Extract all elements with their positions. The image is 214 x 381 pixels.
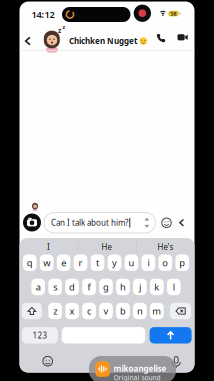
- button[interactable]: l: [167, 279, 181, 295]
- staticText: f: [87, 281, 90, 293]
- staticText: I: [47, 242, 50, 252]
- button[interactable]: t: [91, 254, 104, 271]
- staticText: He's: [157, 242, 173, 252]
- staticText: a: [36, 281, 41, 293]
- staticText: s: [53, 281, 57, 293]
- staticText: q: [27, 256, 33, 269]
- staticText: u: [128, 256, 134, 269]
- button[interactable]: Call: [152, 29, 170, 47]
- button[interactable]: m: [150, 303, 164, 319]
- button[interactable]: c: [82, 303, 96, 319]
- button[interactable]: o: [158, 254, 172, 271]
- staticText: t: [96, 256, 99, 269]
- staticText: b: [120, 305, 126, 317]
- staticText: g: [103, 281, 109, 293]
- button[interactable]: Send a chat: [44, 212, 155, 233]
- button[interactable]: Emoji: [40, 353, 55, 369]
- button[interactable]: r: [74, 254, 87, 271]
- staticText: j: [139, 281, 141, 293]
- staticText: Chichken Nugget: [69, 36, 137, 46]
- staticText: r: [79, 256, 83, 269]
- staticText: 14:12: [31, 8, 54, 21]
- button[interactable]: v: [99, 303, 113, 319]
- staticText: h: [120, 281, 126, 293]
- staticText: 123: [32, 330, 47, 341]
- button[interactable]: He: [79, 239, 135, 254]
- button[interactable]: 123: [22, 327, 58, 343]
- button[interactable]: x: [65, 303, 79, 319]
- button[interactable]: h: [116, 279, 130, 295]
- button[interactable]: s: [48, 279, 62, 295]
- button[interactable]: g: [99, 279, 113, 295]
- staticText: k: [154, 281, 159, 293]
- staticText: y: [112, 256, 117, 269]
- staticText: d: [69, 281, 75, 293]
- button[interactable]: z: [48, 303, 62, 319]
- button[interactable]: Original sound - mikoangelise: [89, 356, 176, 381]
- staticText: i: [147, 256, 149, 269]
- button[interactable]: n: [133, 303, 147, 319]
- button[interactable]: k: [150, 279, 164, 295]
- button[interactable]: w: [40, 254, 53, 271]
- button[interactable]: Shift: [22, 303, 42, 319]
- button[interactable]: d: [65, 279, 79, 295]
- button[interactable]: Space: [62, 327, 145, 343]
- button[interactable]: f: [82, 279, 96, 295]
- staticText: p: [179, 256, 185, 269]
- button[interactable]: I: [21, 239, 77, 254]
- staticText: He: [101, 242, 112, 252]
- button[interactable]: y: [108, 254, 121, 271]
- button[interactable]: u: [125, 254, 138, 271]
- button[interactable]: He's: [137, 239, 193, 254]
- staticText: w: [43, 256, 50, 269]
- button[interactable]: j: [133, 279, 147, 295]
- staticText: n: [137, 305, 143, 317]
- button[interactable]: Delete: [170, 303, 191, 319]
- button[interactable]: e: [57, 254, 70, 271]
- button[interactable]: Dictation: [169, 354, 184, 371]
- staticText: c: [87, 305, 91, 317]
- staticText: mikoangelise: [113, 363, 166, 374]
- staticText: x: [70, 305, 75, 317]
- staticText: Original sound: [113, 373, 160, 381]
- staticText: z: [62, 23, 65, 31]
- staticText: v: [103, 305, 108, 317]
- staticText: o: [162, 256, 168, 269]
- staticText: e: [61, 256, 66, 269]
- button[interactable]: Video call: [173, 30, 192, 44]
- staticText: m: [152, 305, 161, 317]
- staticText: l: [173, 281, 175, 293]
- staticText: z: [58, 26, 61, 35]
- button[interactable]: a: [31, 279, 45, 295]
- button[interactable]: Back: [18, 30, 37, 52]
- staticText: 58: [170, 10, 176, 17]
- staticText: Can I talk about him?: [51, 217, 128, 228]
- button[interactable]: i: [142, 254, 155, 271]
- button[interactable]: q: [23, 254, 36, 271]
- button[interactable]: Send: [150, 327, 192, 343]
- button[interactable]: Camera: [23, 213, 41, 231]
- staticText: z: [53, 305, 57, 317]
- button[interactable]: p: [175, 254, 189, 271]
- button[interactable]: b: [116, 303, 130, 319]
- button[interactable]: More: [175, 215, 188, 231]
- button[interactable]: Stickers: [159, 215, 174, 230]
